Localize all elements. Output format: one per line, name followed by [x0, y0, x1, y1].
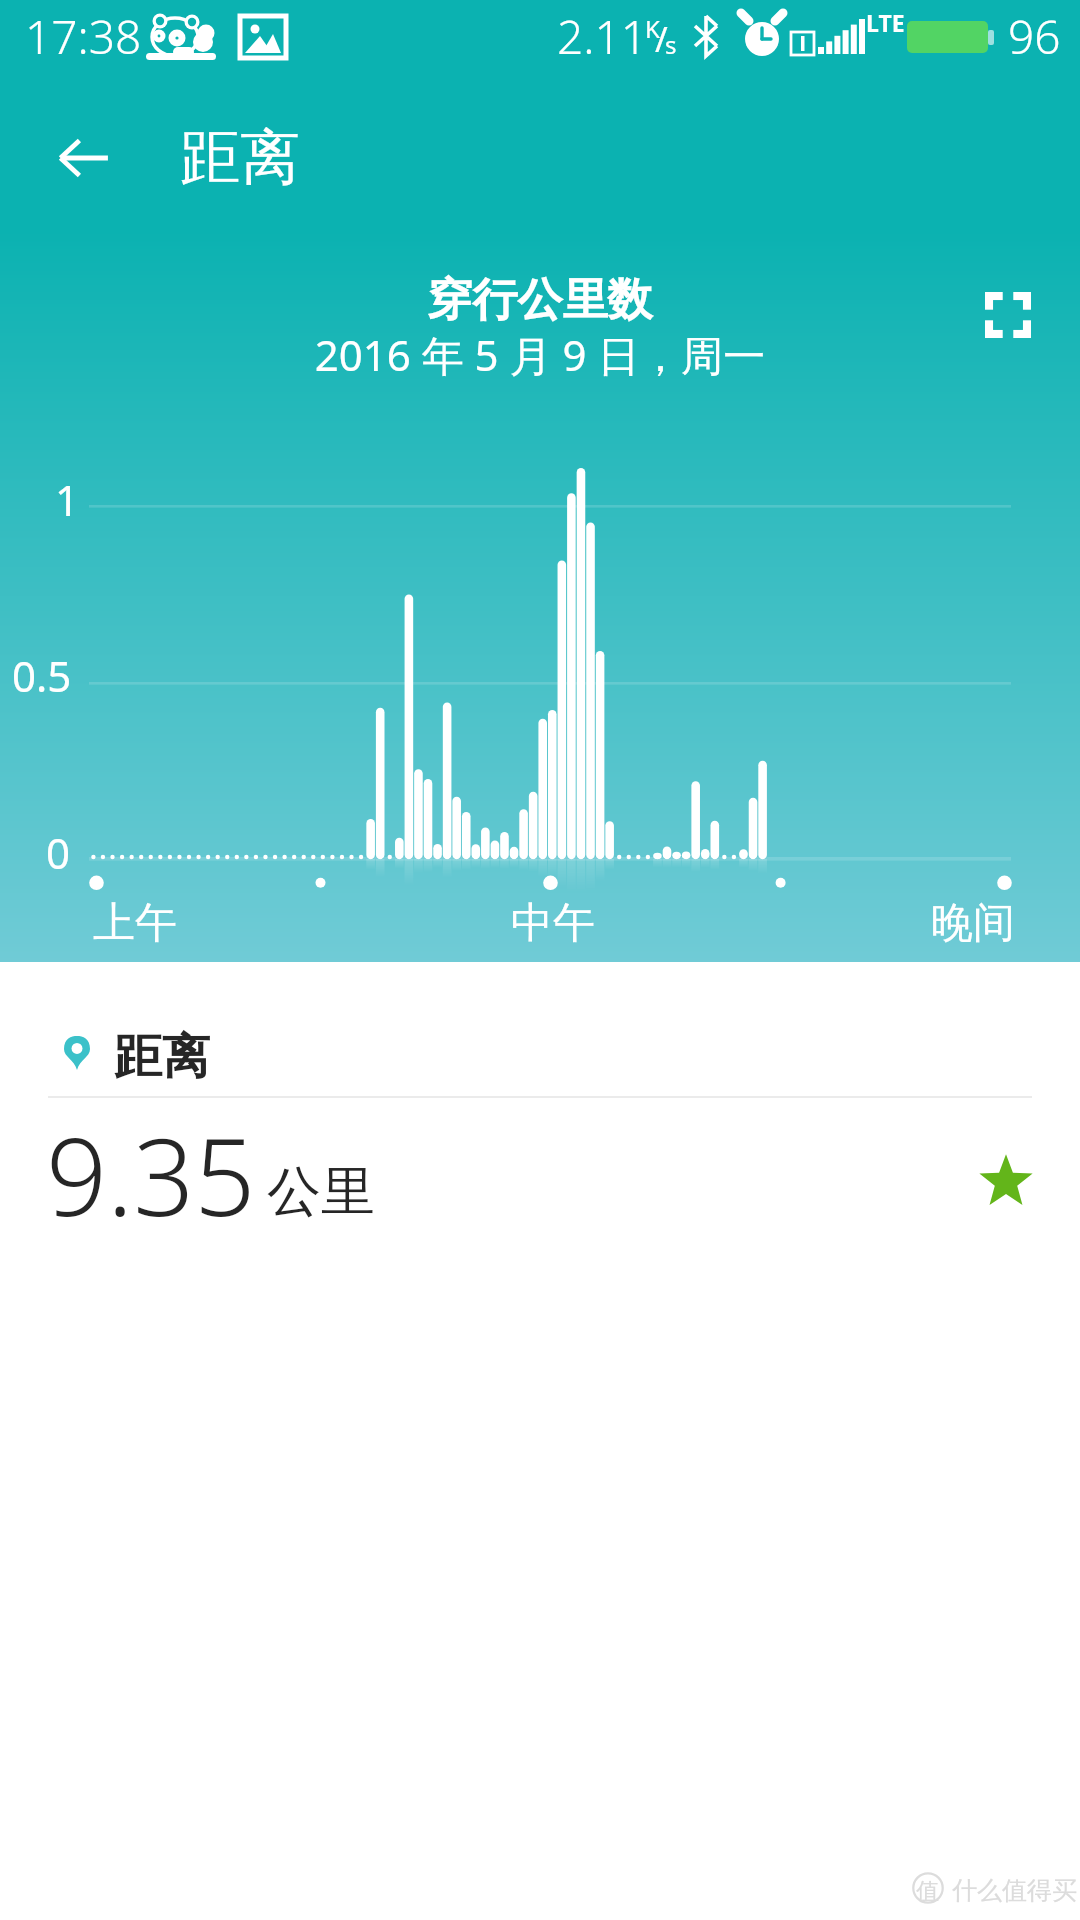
staticText: K	[645, 12, 660, 45]
button[interactable]: Fullscreen	[985, 292, 1031, 338]
staticText: LTE	[866, 7, 905, 38]
staticText: 距离	[114, 1027, 210, 1087]
staticText: 公里	[267, 1158, 375, 1226]
staticText: 9.35	[46, 1102, 256, 1248]
staticText: /	[655, 16, 668, 62]
button[interactable]: Back	[38, 112, 130, 204]
staticText: 1	[55, 471, 80, 528]
staticText: 上午	[93, 897, 177, 950]
staticText: 距离	[180, 120, 300, 196]
staticText: 什么值得买	[952, 1875, 1077, 1906]
staticText: 2.11	[557, 5, 648, 68]
staticText: 中午	[511, 897, 595, 950]
staticText: 0.5	[12, 647, 72, 704]
button[interactable]: Favorite	[978, 1152, 1034, 1208]
staticText: 穿行公里数	[0, 272, 1080, 329]
staticText: 晚间	[931, 897, 1015, 950]
staticText: s	[665, 28, 677, 61]
button[interactable]: 距离	[0, 962, 1080, 1262]
staticText: 值	[916, 1877, 939, 1906]
staticText: 17:38	[25, 5, 142, 68]
staticText: 0	[46, 824, 71, 881]
staticText: 96	[1008, 5, 1061, 68]
staticText: 2016 年 5 月 9 日，周一	[0, 326, 1080, 383]
